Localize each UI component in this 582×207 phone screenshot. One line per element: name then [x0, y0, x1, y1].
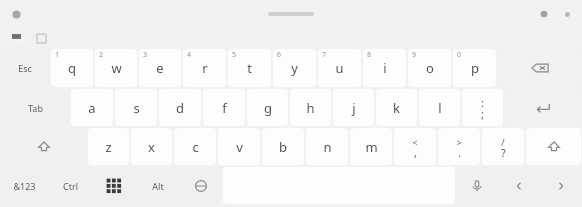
staticText: b [279, 138, 287, 156]
staticText: c [192, 138, 199, 156]
button[interactable]: m [350, 128, 392, 165]
button[interactable]: k [376, 89, 417, 126]
staticText: o [426, 59, 434, 77]
button[interactable]: l [419, 89, 460, 126]
staticText: Tab [28, 102, 43, 114]
button[interactable]: v [218, 128, 260, 165]
staticText: 7 [322, 50, 327, 60]
staticText: f [222, 99, 227, 117]
button[interactable]: 6 [273, 49, 316, 87]
staticText: k [393, 99, 400, 117]
staticText: 8 [367, 50, 372, 60]
button[interactable]: . [438, 128, 480, 165]
staticText: g [264, 99, 272, 117]
staticText: z [105, 138, 112, 156]
staticText: / [501, 136, 505, 148]
staticText: r [202, 59, 208, 77]
staticText: > [456, 136, 462, 148]
staticText: y [291, 59, 298, 77]
button[interactable]: , [394, 128, 436, 165]
button[interactable]: z [88, 128, 129, 165]
staticText: ; [481, 106, 484, 121]
button[interactable]: ; [462, 89, 503, 126]
button[interactable]: c [174, 128, 216, 165]
staticText: : [481, 95, 484, 110]
button[interactable]: 5 [228, 49, 271, 87]
button[interactable]: Tab [1, 89, 69, 126]
staticText: Alt [152, 180, 164, 192]
button[interactable]: Esc [1, 49, 49, 87]
button[interactable]: s [115, 89, 157, 126]
staticText: j [352, 99, 356, 117]
button[interactable]: ? [482, 128, 524, 165]
staticText: e [156, 59, 164, 77]
button[interactable]: f [203, 89, 245, 126]
button[interactable]: j [333, 89, 374, 126]
button[interactable]: 1 [51, 49, 93, 87]
staticText: . [458, 145, 461, 160]
button[interactable]: Language [181, 167, 221, 204]
button[interactable]: Backspace [498, 49, 581, 87]
button[interactable]: g [247, 89, 288, 126]
button[interactable]: Emoji [94, 167, 134, 204]
button[interactable]: 7 [318, 49, 361, 87]
staticText: p [471, 59, 479, 77]
staticText: ? [501, 145, 506, 160]
staticText: l [438, 99, 442, 117]
button[interactable]: Left [499, 167, 539, 204]
button[interactable]: d [159, 89, 201, 126]
button[interactable]: Sticker [33, 30, 49, 46]
staticText: u [335, 59, 344, 77]
staticText: s [133, 99, 140, 117]
staticText: 3 [143, 50, 148, 60]
staticText: t [247, 59, 252, 77]
button[interactable]: More options [560, 7, 574, 21]
button[interactable]: Keyboard settings [8, 6, 24, 22]
staticText: Ctrl [63, 180, 78, 192]
button[interactable]: x [131, 128, 172, 165]
staticText: , [414, 145, 417, 160]
button[interactable]: &123 [1, 167, 47, 204]
staticText: q [68, 59, 76, 77]
staticText: h [306, 99, 315, 117]
staticText: 0 [457, 50, 462, 60]
staticText: d [176, 99, 184, 117]
staticText: v [236, 138, 243, 156]
button[interactable]: 8 [363, 49, 406, 87]
button[interactable]: 0 [453, 49, 496, 87]
button[interactable]: h [290, 89, 331, 126]
button[interactable]: Ctrl [49, 167, 92, 204]
staticText: < [412, 136, 418, 148]
button[interactable]: Alt [136, 167, 179, 204]
staticText: x [148, 138, 155, 156]
button[interactable]: 2 [95, 49, 137, 87]
button[interactable]: Voice input [537, 7, 551, 21]
button[interactable]: a [71, 89, 113, 126]
button[interactable]: 3 [139, 49, 181, 87]
staticText: 4 [187, 50, 192, 60]
staticText: &123 [13, 180, 36, 192]
staticText: 1 [55, 50, 60, 60]
button[interactable]: Enter [505, 89, 581, 126]
button[interactable]: 9 [408, 49, 451, 87]
staticText: w [111, 59, 122, 77]
button[interactable]: Right [541, 167, 581, 204]
staticText: 5 [232, 50, 237, 60]
staticText: n [323, 138, 332, 156]
staticText: a [88, 99, 96, 117]
staticText: 2 [99, 50, 104, 60]
button[interactable]: Voice input [457, 167, 497, 204]
button[interactable]: Shift [526, 128, 581, 165]
staticText: Esc [18, 62, 32, 74]
staticText: i [383, 59, 387, 77]
staticText: m [365, 138, 378, 156]
button[interactable]: Clipboard [8, 30, 24, 46]
button[interactable]: 4 [183, 49, 226, 87]
staticText: 6 [277, 50, 282, 60]
button[interactable]: Shift [1, 128, 86, 165]
button[interactable]: n [306, 128, 348, 165]
staticText: 9 [412, 50, 417, 60]
button[interactable]: b [262, 128, 304, 165]
